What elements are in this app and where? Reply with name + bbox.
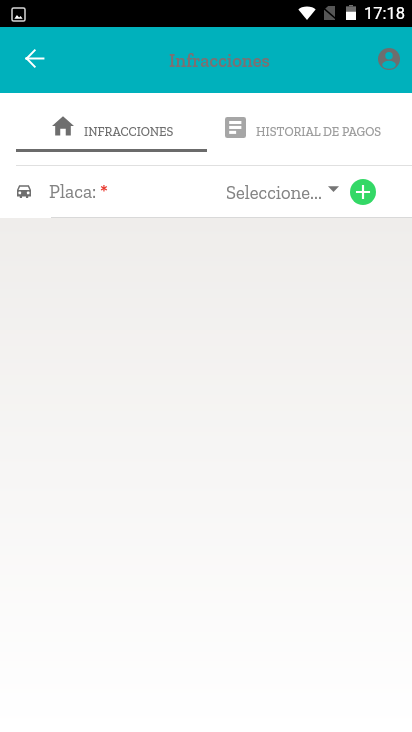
staticText: Infracciones xyxy=(169,50,270,72)
staticText: HISTORIAL DE PAGOS xyxy=(256,124,382,139)
button[interactable]: Placa: xyxy=(0,166,412,217)
staticText: Seleccione... xyxy=(226,181,322,203)
button[interactable]: Back xyxy=(12,38,56,82)
staticText: 17:18 xyxy=(364,4,406,23)
staticText: Placa: xyxy=(49,180,97,203)
button[interactable]: HISTORIAL DE PAGOS xyxy=(207,93,412,149)
button[interactable]: Seleccione... xyxy=(226,181,339,203)
staticText: INFRACCIONES xyxy=(84,124,174,139)
button[interactable]: Account xyxy=(367,38,411,82)
staticText: * xyxy=(100,180,108,203)
button[interactable]: INFRACCIONES xyxy=(0,93,207,149)
button[interactable]: Add xyxy=(350,179,376,205)
